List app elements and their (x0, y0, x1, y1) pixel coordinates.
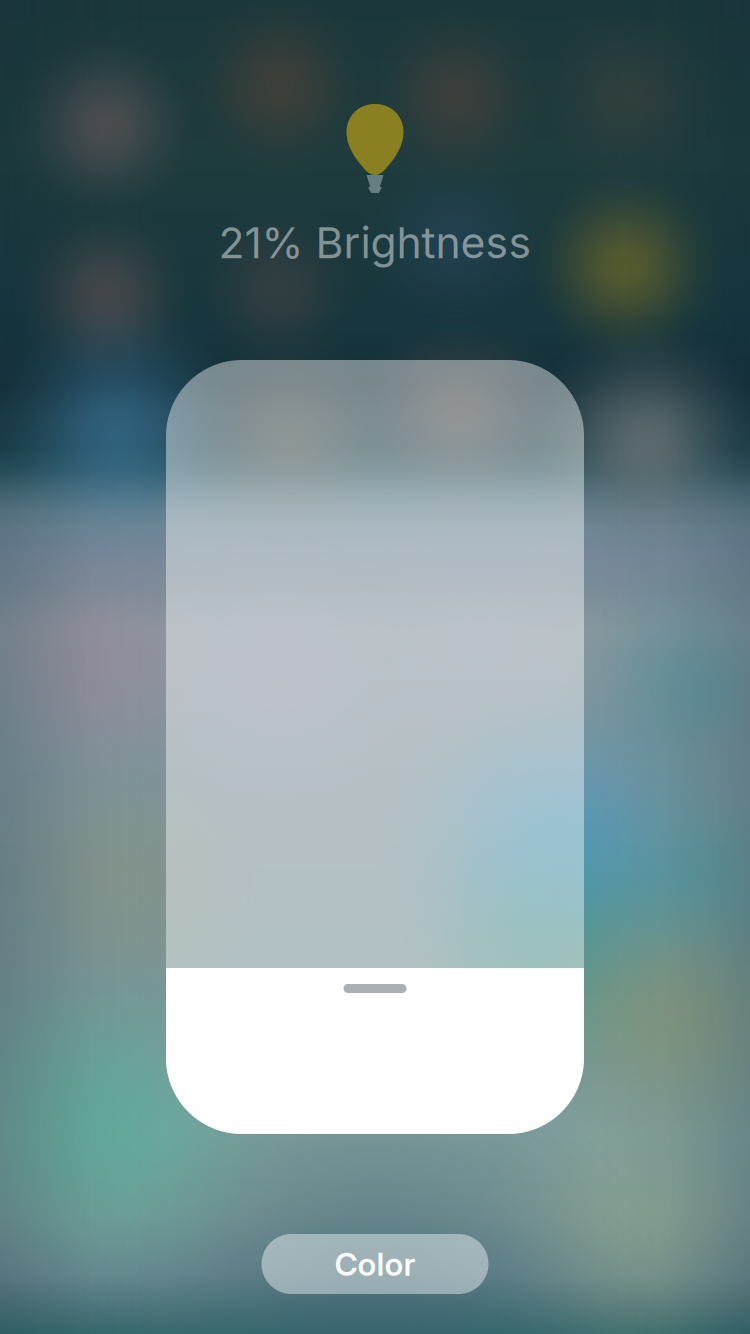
button[interactable]: Color (261, 1234, 488, 1294)
staticText: 21% Brightness (218, 217, 531, 269)
staticText: Color (334, 1245, 415, 1283)
